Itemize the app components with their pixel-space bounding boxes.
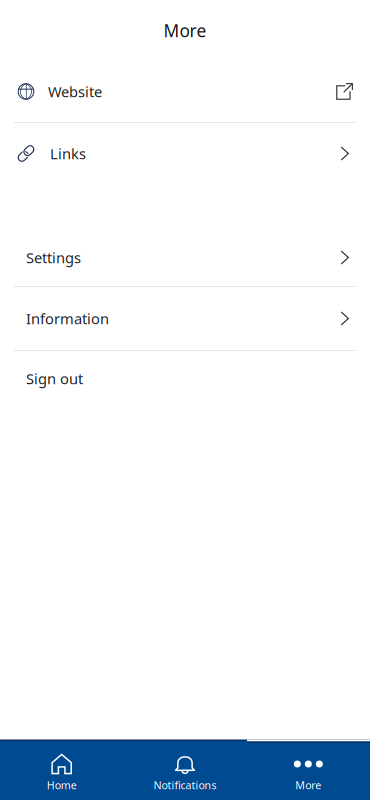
staticText: More [163, 19, 206, 42]
button[interactable]: More [247, 741, 370, 800]
staticText: Sign out [26, 369, 83, 388]
staticText: Links [50, 144, 86, 163]
button[interactable]: Website [0, 61, 370, 122]
staticText: Notifications [153, 778, 216, 792]
button[interactable]: Settings [0, 229, 370, 286]
button[interactable]: Links [0, 123, 370, 184]
staticText: Website [48, 82, 102, 101]
staticText: Home [47, 778, 77, 792]
button[interactable]: Notifications [123, 741, 247, 800]
staticText: Information [26, 309, 109, 328]
button[interactable]: Information [0, 287, 370, 350]
button[interactable]: Home [0, 741, 123, 800]
button[interactable]: Sign out [0, 351, 370, 412]
staticText: More [295, 778, 321, 792]
staticText: Settings [26, 248, 81, 267]
